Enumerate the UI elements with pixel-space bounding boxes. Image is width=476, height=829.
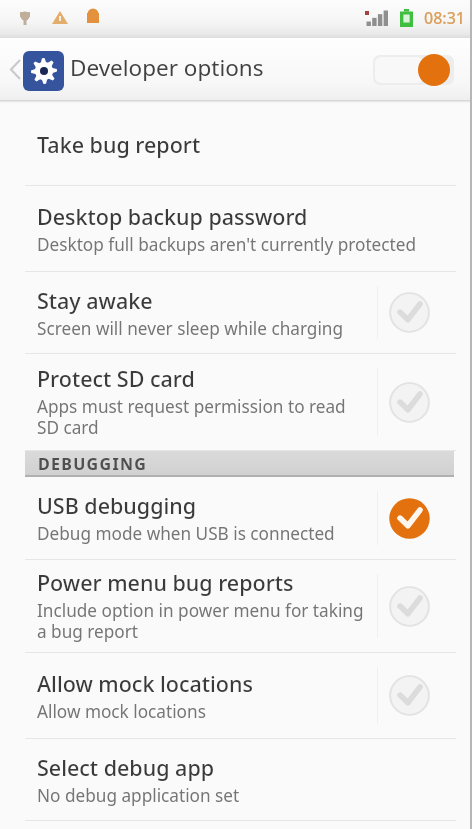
button[interactable]: Protect SD card bbox=[0, 354, 476, 450]
button[interactable]: Allow mock locations bbox=[0, 653, 476, 738]
staticText: 08:31 bbox=[424, 7, 465, 29]
button[interactable]: Developer options enabled bbox=[373, 54, 454, 86]
staticText: Developer options bbox=[70, 52, 264, 83]
button[interactable]: Navigate up bbox=[5, 47, 25, 91]
staticText: Include option in power menu for taking … bbox=[37, 599, 364, 644]
staticText: USB debugging bbox=[37, 491, 197, 520]
staticText: Allow mock locations bbox=[37, 669, 253, 698]
button[interactable]: Stay awake bbox=[363, 272, 455, 353]
staticText: Stay awake bbox=[37, 286, 153, 315]
button[interactable]: Power menu bug reports bbox=[0, 560, 476, 652]
staticText: Desktop full backups aren't currently pr… bbox=[37, 233, 417, 256]
button[interactable]: Select debug app bbox=[0, 739, 476, 820]
staticText: Debug mode when USB is connected bbox=[37, 522, 335, 545]
staticText: DEBUGGING bbox=[38, 453, 148, 475]
button[interactable]: Take bug report bbox=[0, 103, 476, 185]
button[interactable]: Allow mock locations bbox=[363, 653, 455, 738]
staticText: No debug application set bbox=[37, 784, 240, 807]
staticText: Protect SD card bbox=[37, 364, 195, 393]
staticText: Take bug report bbox=[37, 130, 201, 159]
button[interactable]: Developer options icon bbox=[23, 51, 64, 91]
staticText: Desktop backup password bbox=[37, 202, 308, 231]
staticText: Power menu bug reports bbox=[37, 568, 294, 597]
button[interactable]: Protect SD card bbox=[363, 354, 455, 450]
button[interactable]: Stay awake bbox=[0, 272, 476, 353]
button[interactable]: Desktop backup password bbox=[0, 186, 476, 271]
staticText: Apps must request permission to read SD … bbox=[37, 395, 346, 440]
staticText: Allow mock locations bbox=[37, 700, 206, 723]
staticText: Select debug app bbox=[37, 753, 215, 782]
button[interactable]: Power menu bug reports bbox=[363, 560, 455, 652]
staticText: Screen will never sleep while charging bbox=[37, 317, 344, 340]
button[interactable]: USB debugging bbox=[0, 477, 476, 559]
button[interactable]: USB debugging bbox=[363, 477, 455, 559]
